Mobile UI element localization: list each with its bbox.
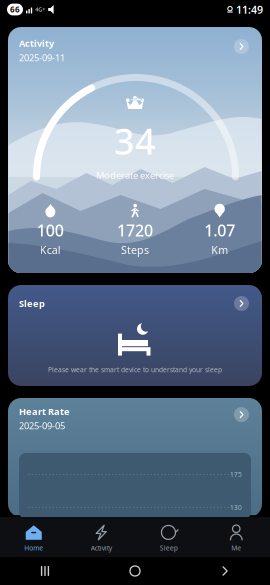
staticText: Heart Rate (19, 405, 70, 417)
staticText: Moderate exercise (96, 169, 174, 181)
staticText: Kcal (40, 243, 61, 257)
staticText: 34 (114, 117, 156, 165)
button[interactable]: Me (202, 520, 270, 557)
staticText: Please wear the smart device to understa… (48, 365, 222, 374)
button[interactable]: Home (90, 557, 180, 585)
staticText: 175 (230, 470, 242, 479)
button[interactable]: Details (232, 37, 251, 56)
button[interactable]: Back (180, 557, 270, 585)
staticText: 4G+ (35, 6, 45, 13)
staticText: Sleep (160, 544, 178, 552)
staticText: Activity (19, 37, 54, 49)
staticText: Me (231, 544, 241, 552)
staticText: Km (211, 243, 228, 257)
button[interactable]: Recents (0, 557, 90, 585)
staticText: 66 (10, 4, 20, 15)
button[interactable]: Home (0, 520, 67, 557)
staticText: Sleep (19, 297, 45, 310)
staticText: 2025-09-11 (19, 51, 65, 64)
staticText: 100 (37, 220, 64, 241)
staticText: 1720 (117, 220, 153, 241)
staticText: 11:49 (236, 2, 263, 17)
staticText: Steps (121, 243, 149, 257)
staticText: 1.07 (204, 220, 235, 241)
staticText: Home (24, 544, 43, 552)
button[interactable]: Sleep (135, 520, 202, 557)
button[interactable]: Activity (67, 520, 135, 557)
button[interactable]: Details (232, 294, 251, 313)
staticText: Activity (91, 544, 112, 552)
staticText: 130 (230, 503, 242, 512)
staticText: 2025-09-05 (19, 419, 65, 432)
button[interactable]: Details (232, 405, 251, 424)
